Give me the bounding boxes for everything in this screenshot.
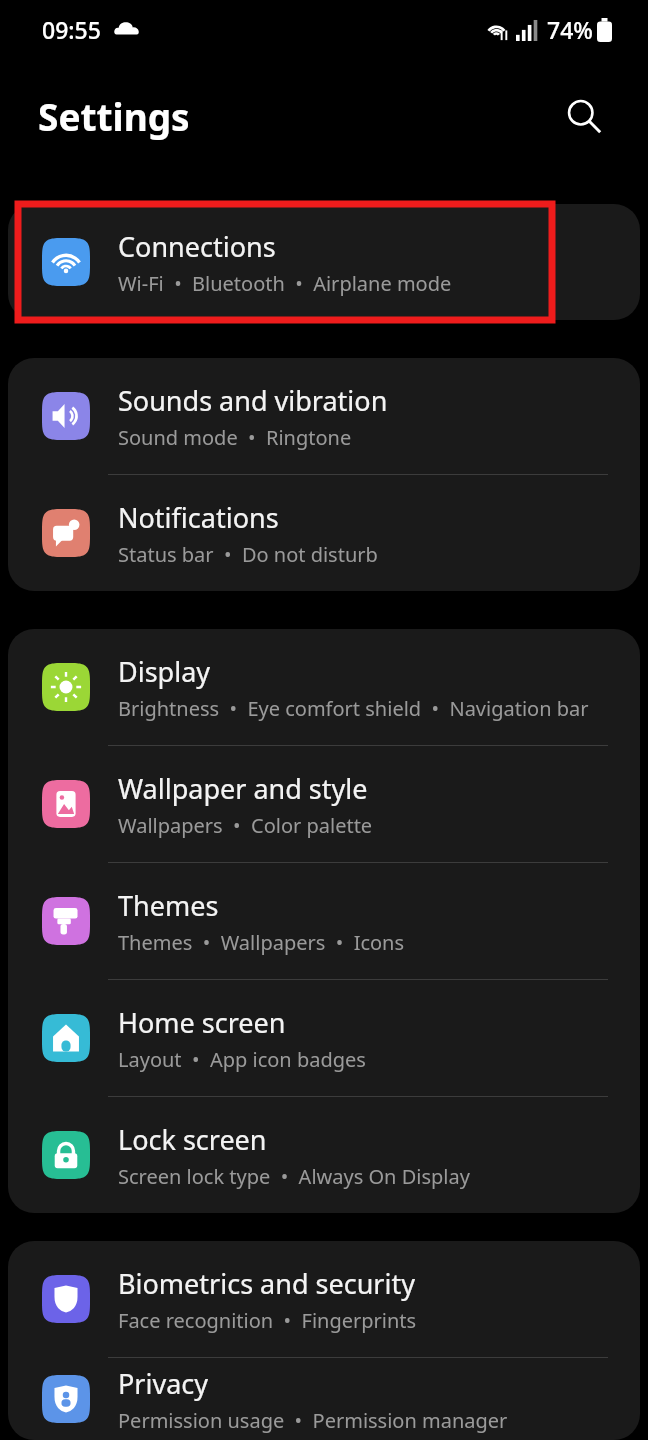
- staticText: Notifications: [118, 499, 279, 536]
- staticText: Connections: [118, 228, 276, 265]
- staticText: Privacy: [118, 1365, 209, 1402]
- staticText: Brightness • Eye comfort shield • Naviga…: [118, 695, 589, 722]
- staticText: Layout • App icon badges: [118, 1046, 366, 1073]
- button[interactable]: Search: [550, 82, 618, 150]
- button[interactable]: Privacy: [8, 1358, 640, 1440]
- button[interactable]: Sounds and vibration: [8, 358, 640, 474]
- button[interactable]: Lock screen: [8, 1097, 640, 1213]
- staticText: Biometrics and security: [118, 1265, 415, 1302]
- staticText: Settings: [38, 91, 190, 141]
- button[interactable]: Wallpaper and style: [8, 746, 640, 862]
- staticText: Face recognition • Fingerprints: [118, 1307, 417, 1334]
- staticText: 09:55: [42, 14, 101, 45]
- staticText: Lock screen: [118, 1121, 267, 1158]
- staticText: Wallpapers • Color palette: [118, 812, 373, 839]
- staticText: Status bar • Do not disturb: [118, 541, 378, 568]
- staticText: Home screen: [118, 1004, 286, 1041]
- staticText: Wallpaper and style: [118, 770, 368, 807]
- staticText: Display: [118, 653, 211, 690]
- button[interactable]: Home screen: [8, 980, 640, 1096]
- button[interactable]: Notifications: [8, 475, 640, 591]
- staticText: Sound mode • Ringtone: [118, 424, 352, 451]
- staticText: Sounds and vibration: [118, 382, 388, 419]
- staticText: Wi-Fi • Bluetooth • Airplane mode: [118, 270, 452, 297]
- button[interactable]: Biometrics and security: [8, 1241, 640, 1357]
- staticText: 74%: [547, 14, 593, 45]
- button[interactable]: Connections: [8, 204, 640, 320]
- staticText: Themes: [118, 887, 219, 924]
- staticText: Permission usage • Permission manager: [118, 1407, 508, 1434]
- button[interactable]: Themes: [8, 863, 640, 979]
- staticText: Screen lock type • Always On Display: [118, 1163, 470, 1190]
- button[interactable]: Display: [8, 629, 640, 745]
- staticText: Themes • Wallpapers • Icons: [118, 929, 405, 956]
